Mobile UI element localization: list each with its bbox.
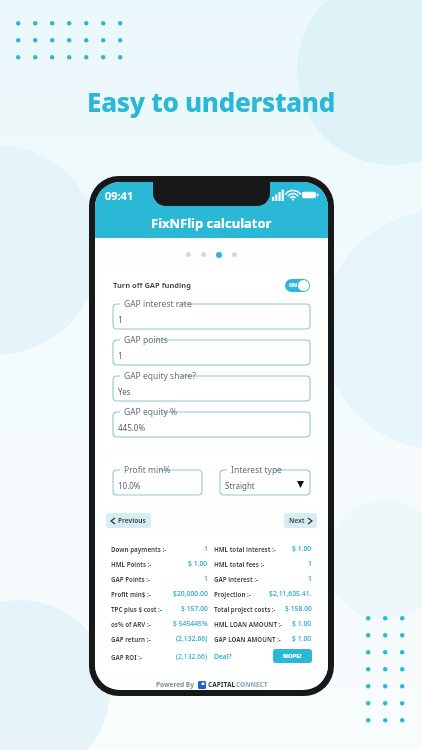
staticText: os% of ARV :- [111, 620, 151, 628]
button[interactable]: GAP equity share? [113, 371, 310, 401]
staticText: CONNECT [236, 680, 268, 689]
staticText: Profit min$ :- [111, 590, 151, 598]
button[interactable]: Profit min% [113, 465, 202, 495]
button[interactable]: Interest type [220, 465, 310, 495]
button[interactable]: GAP equity % [113, 407, 310, 437]
staticText: ON [289, 282, 298, 289]
staticText: 1 [204, 544, 208, 553]
staticText: HML LOAN AMOUNT :- [214, 620, 283, 628]
staticText: Down payments :- [111, 545, 167, 553]
staticText: 1 [308, 559, 312, 568]
button[interactable]: Turn off GAP funding toggle [285, 279, 310, 292]
staticText: GAP LOAN AMOUNT :- [214, 635, 281, 643]
button[interactable]: Previous [106, 513, 151, 528]
staticText: Total project costs :- [214, 605, 276, 613]
staticText: 445.0% [118, 422, 146, 433]
staticText: 1 [118, 350, 123, 361]
staticText: $ 1.00 [292, 544, 312, 553]
staticText: $ 1.00 [292, 634, 312, 643]
staticText: HML Points :- [111, 560, 152, 568]
staticText: 1 [118, 314, 123, 325]
button[interactable]: Next [284, 513, 317, 528]
staticText: 09:41 [105, 188, 134, 203]
staticText: 10.0% [118, 480, 141, 491]
staticText: (2,132.66) [176, 634, 208, 643]
staticText: Deal? [214, 652, 232, 661]
staticText: GAP return :- [111, 635, 151, 643]
staticText: $20,000.00 [173, 589, 208, 598]
staticText: Previous [118, 516, 146, 525]
staticText: NOPE! [283, 652, 302, 660]
staticText: GAP equity % [124, 406, 178, 418]
staticText: TPC plus $ cost :- [111, 605, 162, 613]
staticText: $2,11,635.41. [269, 589, 312, 598]
staticText: GAP interest :- [214, 575, 258, 583]
staticText: CAPITAL [208, 680, 236, 689]
staticText: Interest type [231, 464, 282, 476]
staticText: (2,132.66) [176, 652, 208, 661]
staticText: GAP ROI :- [111, 653, 142, 661]
staticText: 1 [308, 574, 312, 583]
staticText: 1 [204, 574, 208, 583]
button[interactable]: Turn off GAP funding [113, 274, 310, 296]
staticText: Straight [225, 480, 255, 491]
staticText: $ 158.00 [285, 604, 312, 613]
staticText: FixNFlip calculator [151, 214, 272, 232]
staticText: $ 157.00 [181, 604, 208, 613]
staticText: $ 545445% [173, 619, 208, 628]
staticText: GAP interest rate [124, 298, 192, 310]
staticText: $ 1.00 [292, 619, 312, 628]
button[interactable]: GAP points [113, 335, 310, 365]
staticText: $ 1.00 [188, 559, 208, 568]
staticText: HML total interest :- [214, 545, 276, 553]
staticText: Yes [118, 386, 131, 397]
staticText: Projection :- [214, 590, 251, 598]
staticText: GAP equity share? [124, 370, 196, 382]
staticText: Profit min% [124, 464, 171, 476]
staticText: HML total fees :- [214, 560, 265, 568]
staticText: Turn off GAP funding [113, 280, 191, 290]
button[interactable]: NOPE! [273, 649, 312, 663]
button[interactable]: GAP interest rate [113, 299, 310, 329]
staticText: Easy to understand [0, 84, 422, 119]
staticText: GAP Points :- [111, 575, 150, 583]
staticText: GAP points [124, 334, 168, 346]
staticText: Next [289, 516, 305, 525]
staticText: Powered By [156, 680, 194, 689]
